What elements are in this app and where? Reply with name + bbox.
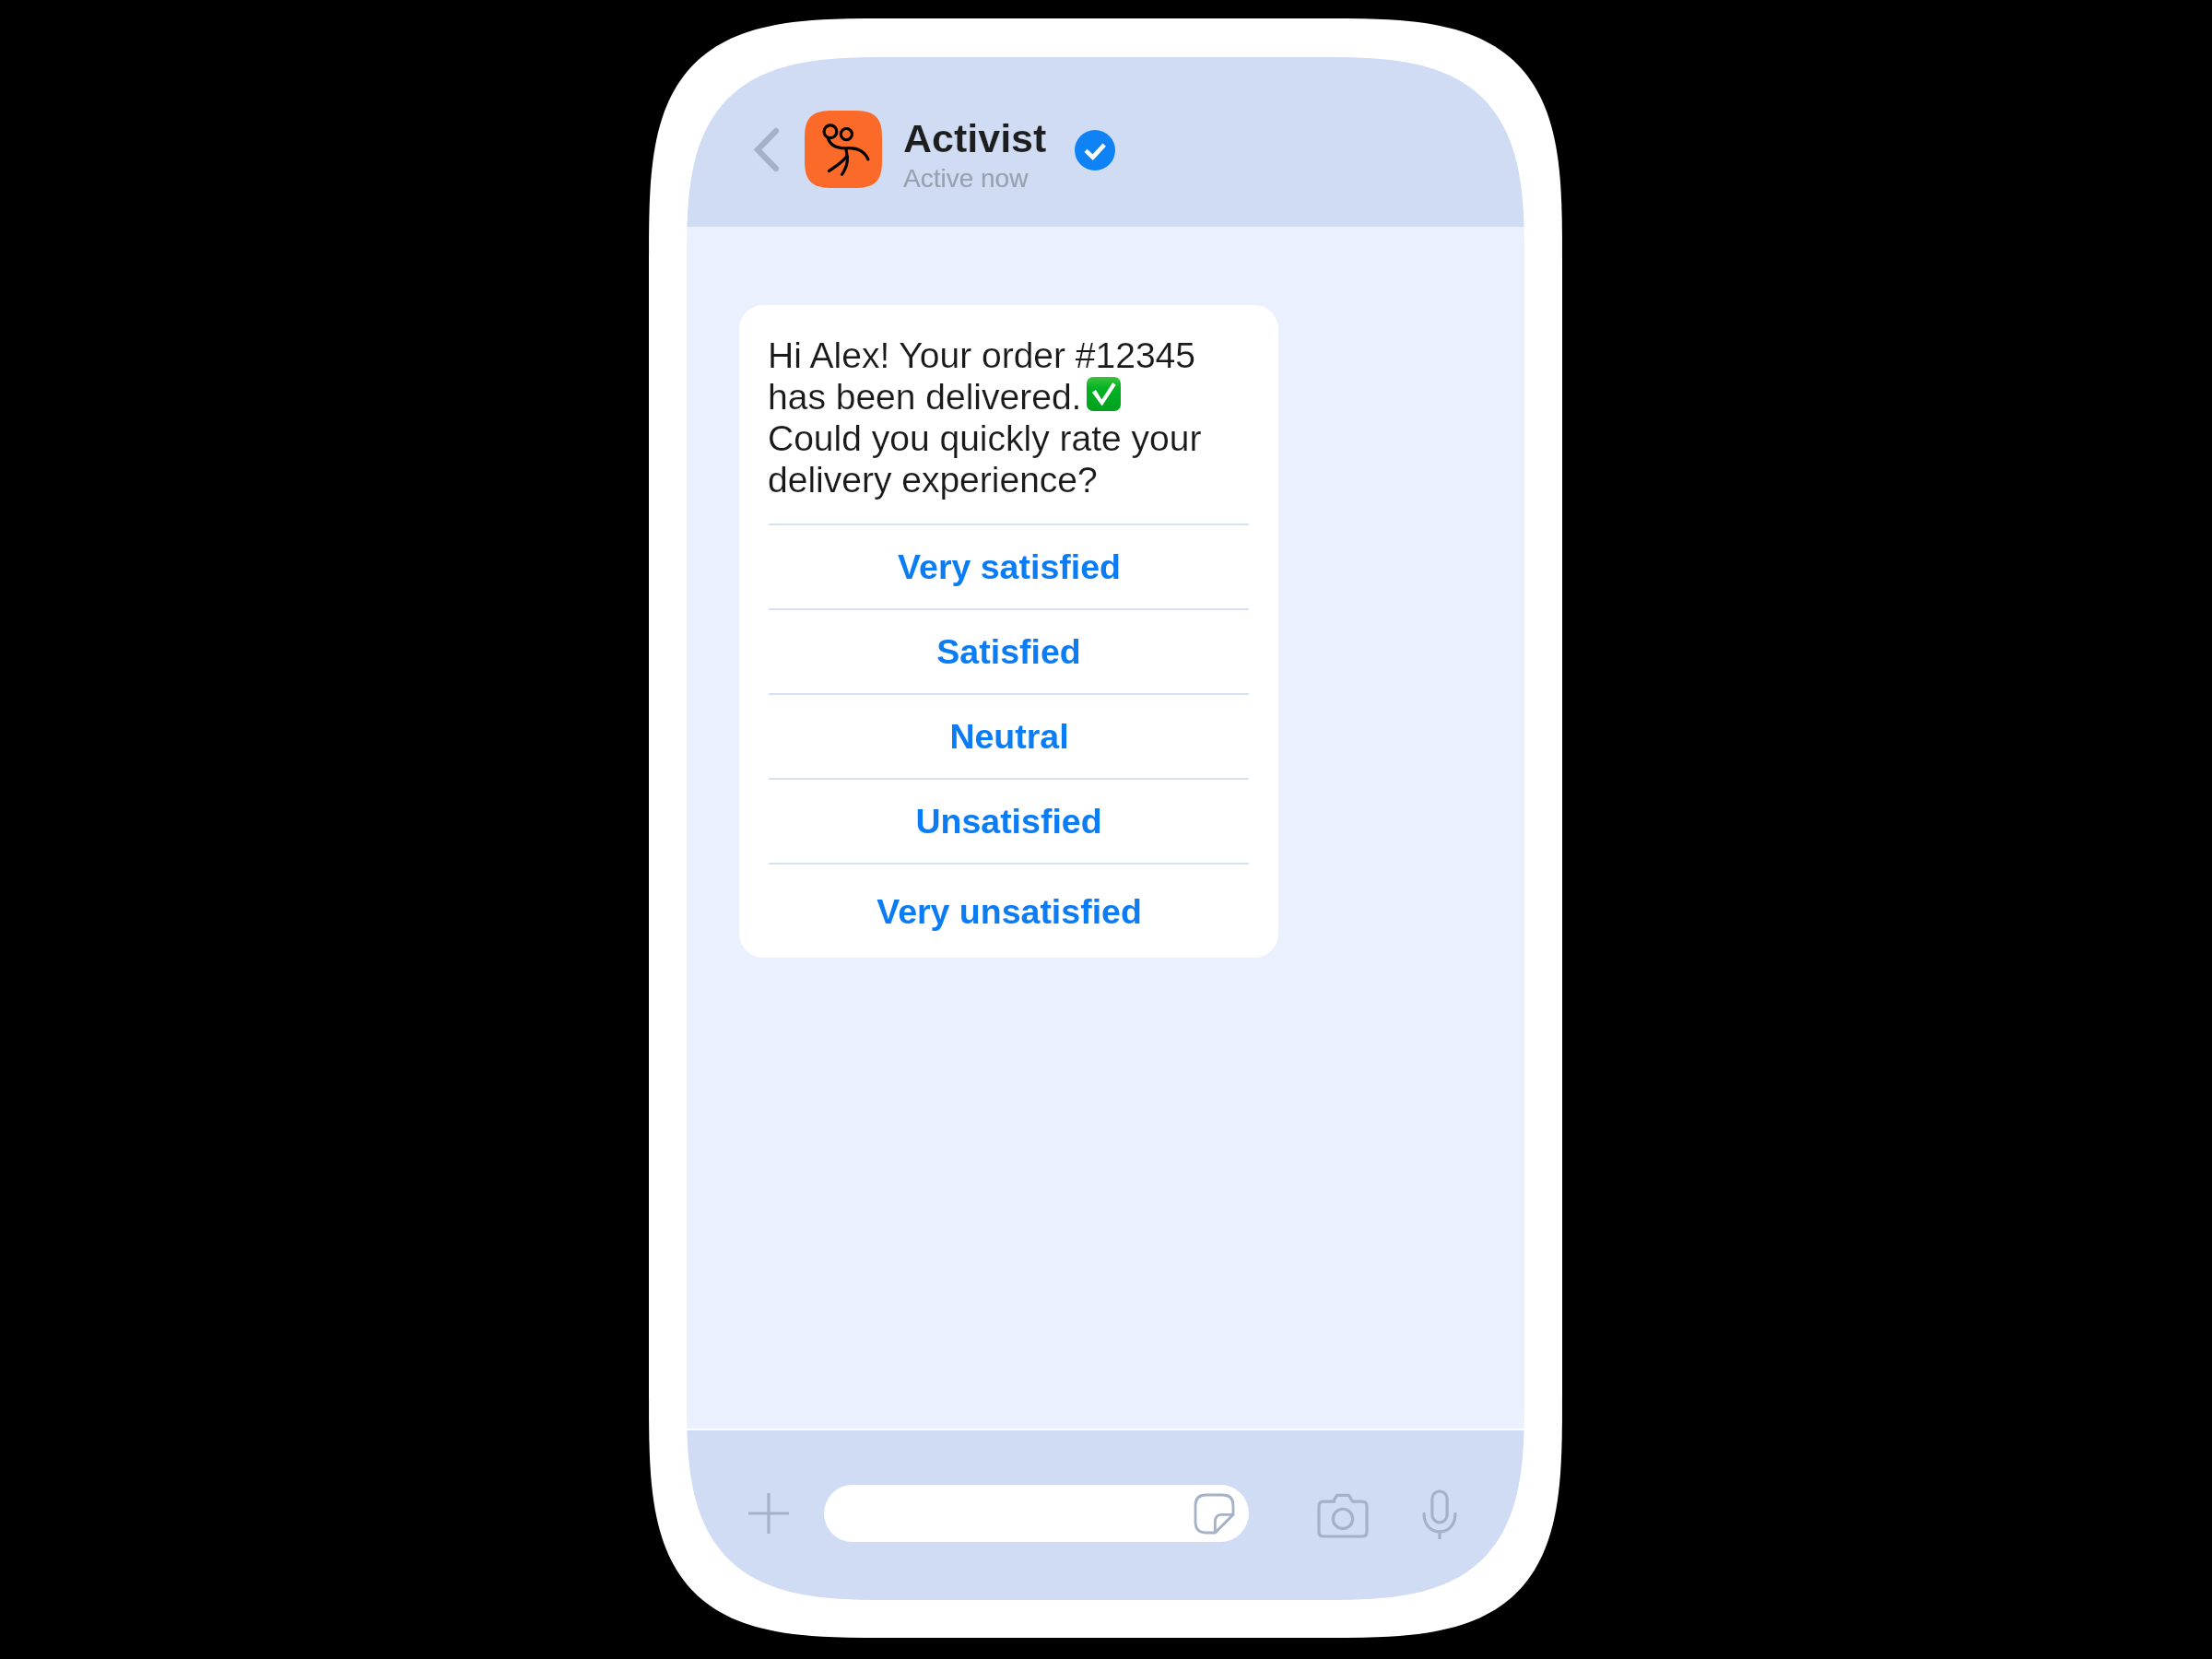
button[interactable]: Very satisfied xyxy=(739,525,1278,608)
button[interactable]: Very unsatisfied xyxy=(739,865,1278,958)
button[interactable]: Camera xyxy=(1312,1485,1373,1546)
button[interactable]: Satisfied xyxy=(739,610,1278,693)
staticText: Very unsatisfied xyxy=(877,892,1142,931)
button[interactable]: Verified account xyxy=(1075,130,1115,171)
button[interactable]: Back xyxy=(739,122,794,177)
staticText: Hi Alex! Your order #12345 has been deli… xyxy=(768,335,1202,500)
other: Activist profile picture xyxy=(805,111,882,188)
button[interactable]: Unsatisfied xyxy=(739,780,1278,863)
staticText: Very satisfied xyxy=(898,547,1121,586)
button[interactable]: Voice message xyxy=(1409,1483,1470,1547)
staticText: Satisfied xyxy=(936,632,1081,671)
button[interactable]: Message input xyxy=(824,1485,1249,1542)
staticText: Neutral xyxy=(949,717,1069,756)
button[interactable]: Activist profile picture xyxy=(797,103,1129,195)
staticText: Unsatisfied xyxy=(915,802,1102,841)
button[interactable]: Neutral xyxy=(739,695,1278,778)
staticText: Activist xyxy=(903,116,1047,160)
button[interactable]: Add attachment xyxy=(742,1487,795,1540)
staticText: Active now xyxy=(903,164,1029,193)
